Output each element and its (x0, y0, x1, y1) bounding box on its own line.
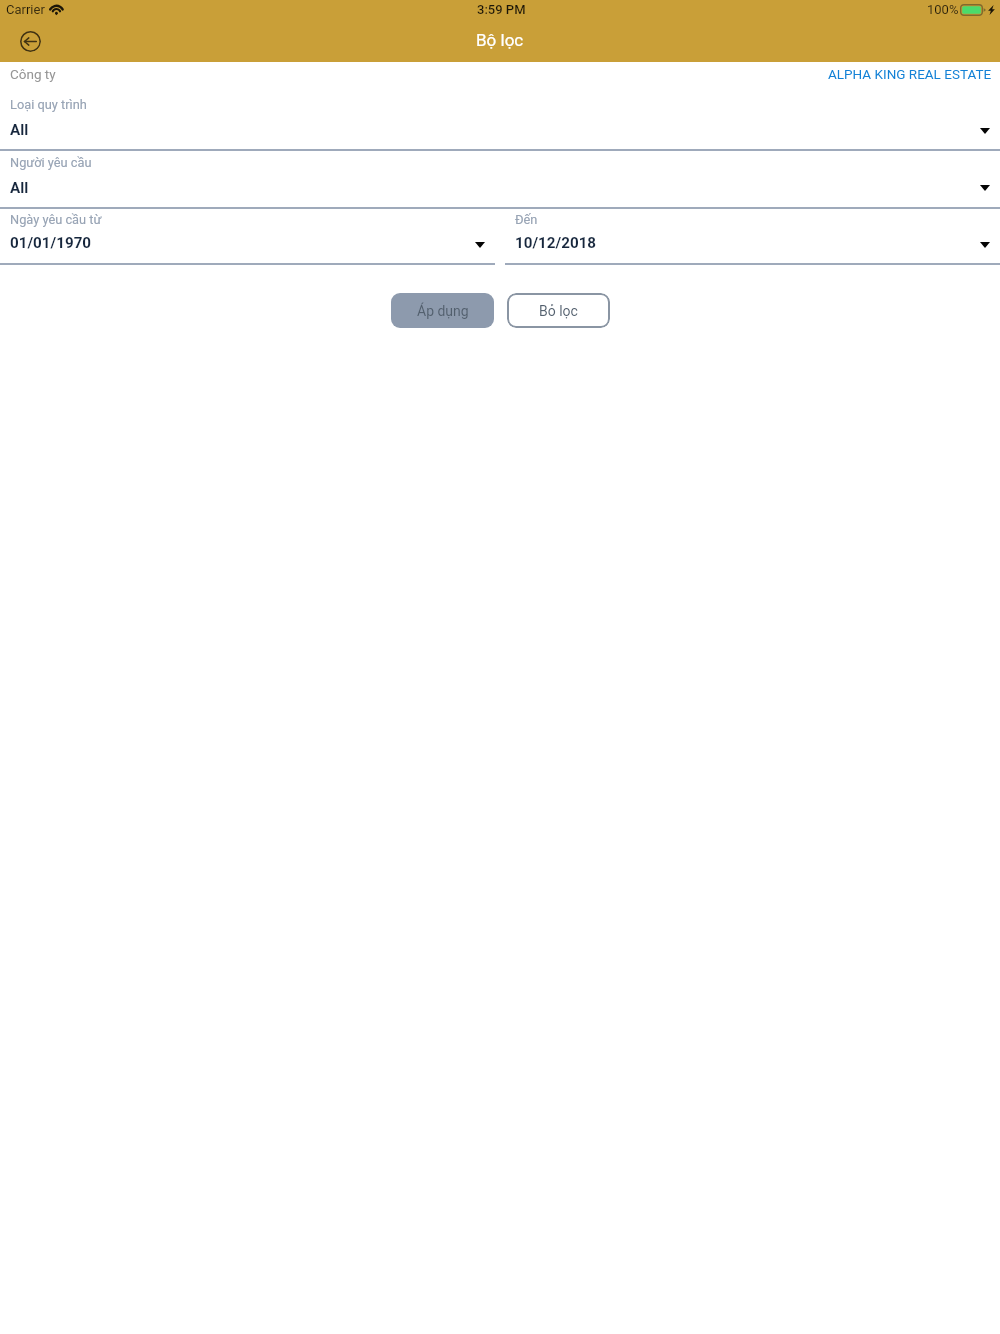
staticText: 3:59 PM (477, 2, 526, 17)
staticText: Áp dụng (417, 303, 469, 319)
staticText: 100% (927, 2, 959, 17)
button[interactable]: Ngày yêu cầu từ (0, 208, 495, 264)
staticText: Đến (515, 212, 538, 227)
staticText: All (10, 179, 29, 197)
button[interactable]: Bỏ lọc (507, 293, 610, 328)
staticText: All (10, 121, 29, 139)
staticText: Công ty (10, 66, 56, 82)
staticText: ALPHA KING REAL ESTATE (828, 66, 992, 82)
staticText: Carrier (6, 2, 45, 17)
button[interactable]: Công ty (0, 60, 1000, 87)
staticText: Người yêu cầu (10, 155, 92, 170)
staticText: Bỏ lọc (539, 303, 578, 319)
button[interactable]: Loại quy trình (0, 91, 1000, 147)
button[interactable]: Áp dụng (391, 293, 494, 328)
staticText: Ngày yêu cầu từ (10, 212, 102, 227)
staticText: Bộ lọc (476, 30, 524, 50)
button[interactable]: Người yêu cầu (0, 150, 1000, 206)
staticText: Loại quy trình (10, 97, 87, 112)
staticText: 01/01/1970 (10, 234, 92, 252)
staticText: 10/12/2018 (515, 234, 597, 252)
button[interactable]: Back (19, 30, 41, 52)
button[interactable]: Đến (505, 208, 1000, 264)
